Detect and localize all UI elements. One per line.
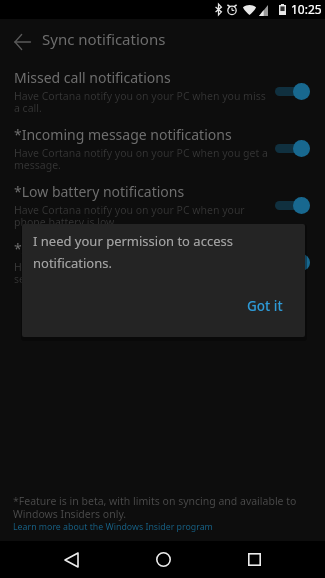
button[interactable]: Recent apps bbox=[230, 541, 278, 578]
button[interactable]: Home bbox=[139, 541, 187, 578]
staticText: *Incoming message notifications bbox=[14, 125, 232, 144]
button[interactable]: Learn more about the Windows Insider pro… bbox=[13, 521, 213, 533]
staticText: Have Cortana notify you on your PC when … bbox=[14, 89, 270, 115]
staticText: Got it bbox=[247, 297, 283, 315]
staticText: *Feature is in beta, with limits on sync… bbox=[13, 494, 312, 521]
staticText: *Low battery notifications bbox=[14, 182, 185, 201]
staticText: 10:25 bbox=[291, 1, 322, 17]
staticText: Have Cortana notify you on your PC when … bbox=[14, 203, 270, 229]
staticText: I need your permission to access notific… bbox=[33, 232, 248, 272]
button[interactable]: Missed call notifications bbox=[0, 62, 325, 119]
button[interactable]: *Low battery notifications bbox=[0, 176, 325, 233]
button[interactable]: Back bbox=[0, 19, 42, 60]
button[interactable]: Back bbox=[47, 541, 95, 578]
staticText: Have Cortana notify you on your PC when … bbox=[14, 146, 270, 172]
staticText: Sync notifications bbox=[42, 29, 166, 49]
staticText: Have Cortana notify you on your PC when … bbox=[14, 260, 270, 286]
staticText: Missed call notifications bbox=[14, 68, 171, 87]
button[interactable]: Got it bbox=[235, 289, 295, 323]
button[interactable]: *App notifications bbox=[0, 233, 325, 290]
button[interactable]: *Incoming message notifications bbox=[0, 119, 325, 176]
staticText: *App notifications bbox=[14, 239, 133, 258]
